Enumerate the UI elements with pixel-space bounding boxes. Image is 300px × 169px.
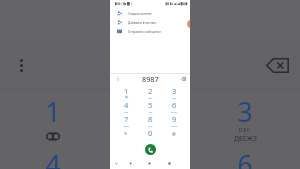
staticText: 1 (124, 86, 129, 96)
staticText: 1 (45, 94, 61, 130)
button[interactable]: # (162, 128, 186, 142)
button[interactable]: 9 (162, 114, 186, 128)
button[interactable]: SIM (115, 76, 121, 82)
staticText: 4 (124, 100, 129, 110)
staticText: 5 (148, 100, 153, 110)
staticText: + (150, 138, 152, 141)
button[interactable]: 5 (138, 100, 162, 114)
staticText: MNO (171, 110, 177, 113)
staticText: 6 (172, 100, 177, 110)
staticText: 6 (230, 147, 260, 169)
button[interactable]: 8 (138, 114, 162, 128)
button[interactable]: Call (145, 144, 156, 155)
staticText: 8987 (142, 74, 159, 84)
button[interactable]: * (114, 128, 138, 142)
button[interactable]: Home (145, 159, 153, 167)
staticText: 2 (148, 86, 153, 96)
staticText: # (172, 130, 176, 138)
button[interactable]: 3 (162, 86, 186, 100)
button[interactable]: 2 (138, 86, 162, 100)
staticText: * (124, 130, 128, 138)
staticText: ДЕЁЖЗ (234, 134, 257, 143)
button[interactable]: Создать контакт (110, 9, 190, 18)
staticText: PQRS (123, 124, 130, 127)
button[interactable]: Backspace (181, 77, 186, 81)
staticText: DEF (239, 126, 251, 133)
button[interactable]: 4 (114, 100, 138, 114)
staticText: 3 (172, 86, 177, 96)
staticText: Создать контакт (128, 12, 152, 16)
staticText: ABC (148, 96, 153, 99)
staticText: 8 (148, 114, 153, 124)
button[interactable]: 1 (114, 86, 138, 100)
button[interactable]: 7 (114, 114, 138, 128)
button[interactable]: Back (126, 159, 134, 167)
staticText: 0 (148, 128, 153, 138)
staticText: GHI (124, 110, 129, 113)
button[interactable]: Recents (165, 159, 173, 167)
button[interactable]: 0 (138, 128, 162, 142)
staticText: Добавить в контакт (128, 21, 157, 25)
button[interactable]: Backspace (266, 58, 289, 73)
staticText: 7 (124, 114, 129, 124)
staticText: DEF (172, 96, 177, 99)
staticText: Отправить сообщение (128, 30, 161, 34)
button[interactable]: Отправить сообщение (110, 27, 190, 36)
button[interactable]: 6 (162, 100, 186, 114)
button[interactable]: More options (20, 59, 23, 72)
staticText: JKL (149, 110, 153, 113)
staticText: WXYZ (171, 124, 178, 127)
button[interactable]: Добавить в контакт (110, 18, 190, 27)
staticText: TUV (148, 124, 153, 127)
staticText: 4 (38, 147, 68, 169)
staticText: 9 (172, 114, 177, 124)
button[interactable]: Hide keyboard (112, 159, 120, 167)
staticText: 3 (237, 94, 253, 130)
